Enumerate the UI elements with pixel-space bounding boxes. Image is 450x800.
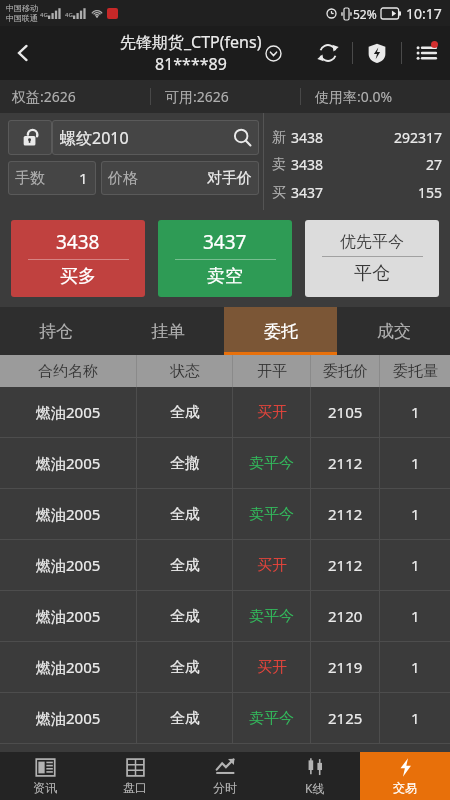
button[interactable]: Back: [0, 26, 46, 80]
button[interactable]: 优先平今: [305, 220, 439, 297]
button[interactable]: 持仓: [0, 307, 112, 355]
staticText: 2119: [328, 657, 363, 677]
staticText: 27: [324, 155, 442, 174]
staticText: 交易: [393, 780, 417, 795]
staticText: 平仓: [354, 262, 390, 285]
staticText: 权益:2626: [12, 87, 76, 106]
staticText: 3438: [291, 155, 324, 174]
button[interactable]: 分时: [180, 752, 270, 800]
button[interactable]: Refresh: [304, 26, 352, 80]
button[interactable]: 先锋期货_CTP(fens): [120, 31, 282, 75]
staticText: 先锋期货_CTP(fens): [120, 31, 262, 53]
staticText: 中国移动: [6, 3, 38, 13]
button[interactable]: 手数: [8, 161, 96, 195]
staticText: 委托价: [323, 362, 368, 381]
staticText: 2112: [328, 504, 363, 524]
staticText: 81****89: [155, 53, 227, 75]
staticText: 卖平今: [249, 505, 294, 524]
staticText: 螺纹2010: [60, 127, 129, 149]
staticText: 委托: [264, 321, 298, 342]
staticText: 3437: [291, 183, 324, 202]
staticText: 可用:2626: [165, 87, 229, 106]
button[interactable]: 盘口: [90, 752, 180, 800]
staticText: 优先平今: [340, 232, 404, 252]
staticText: 1: [411, 453, 420, 473]
button[interactable]: 燃油2005: [0, 693, 450, 743]
staticText: 1: [411, 555, 420, 575]
staticText: 全撤: [170, 454, 200, 473]
staticText: 2125: [328, 708, 363, 728]
staticText: 卖: [272, 156, 286, 174]
staticText: 燃油2005: [36, 555, 101, 575]
staticText: 对手价: [207, 169, 252, 188]
staticText: 3438: [56, 229, 100, 255]
staticText: 买开: [257, 403, 287, 422]
button[interactable]: 3438: [11, 220, 145, 297]
staticText: 开平: [257, 362, 287, 381]
staticText: 状态: [170, 362, 200, 381]
staticText: 1: [411, 657, 420, 677]
staticText: 资讯: [33, 780, 57, 795]
staticText: 1: [411, 708, 420, 728]
staticText: 成交: [377, 321, 411, 342]
staticText: 卖平今: [249, 454, 294, 473]
staticText: 2112: [328, 555, 363, 575]
staticText: 分时: [213, 780, 237, 795]
button[interactable]: Security: [353, 26, 401, 80]
staticText: 全成: [170, 607, 200, 626]
staticText: 52%: [353, 6, 377, 22]
staticText: 卖平今: [249, 709, 294, 728]
staticText: 全成: [170, 709, 200, 728]
staticText: 燃油2005: [36, 657, 101, 677]
staticText: 新: [272, 129, 286, 147]
staticText: 燃油2005: [36, 402, 101, 422]
button[interactable]: 交易: [360, 752, 450, 800]
button[interactable]: 螺纹2010: [52, 120, 259, 155]
staticText: 155: [324, 183, 442, 202]
staticText: 4G: [65, 11, 73, 19]
button[interactable]: 3437: [158, 220, 292, 297]
staticText: 全成: [170, 505, 200, 524]
staticText: 1: [79, 168, 88, 188]
button[interactable]: 成交: [337, 307, 450, 355]
staticText: 燃油2005: [36, 453, 101, 473]
staticText: K线: [305, 780, 325, 796]
button[interactable]: 挂单: [112, 307, 224, 355]
staticText: 1: [411, 606, 420, 626]
staticText: 燃油2005: [36, 504, 101, 524]
button[interactable]: 委托: [224, 307, 337, 355]
staticText: 燃油2005: [36, 708, 101, 728]
staticText: 买开: [257, 658, 287, 677]
staticText: 全成: [170, 403, 200, 422]
staticText: 10:17: [406, 4, 442, 23]
button[interactable]: 燃油2005: [0, 438, 450, 488]
staticText: 卖平今: [249, 607, 294, 626]
staticText: 买: [272, 184, 286, 202]
button[interactable]: 价格: [101, 161, 259, 195]
button[interactable]: 燃油2005: [0, 489, 450, 539]
staticText: 委托量: [393, 362, 438, 381]
staticText: 买开: [257, 556, 287, 575]
staticText: 合约名称: [38, 362, 98, 381]
staticText: 中国联通: [6, 13, 38, 23]
staticText: 3438: [291, 128, 324, 147]
button[interactable]: Unlock: [8, 120, 52, 155]
staticText: 价格: [108, 169, 138, 188]
staticText: 手数: [15, 169, 45, 188]
staticText: 2105: [328, 402, 363, 422]
staticText: 盘口: [123, 780, 147, 795]
button[interactable]: 燃油2005: [0, 642, 450, 692]
button[interactable]: Menu: [402, 26, 450, 80]
button[interactable]: 燃油2005: [0, 591, 450, 641]
button[interactable]: 资讯: [0, 752, 90, 800]
staticText: 燃油2005: [36, 606, 101, 626]
button[interactable]: 燃油2005: [0, 540, 450, 590]
staticText: 全成: [170, 658, 200, 677]
button[interactable]: K线: [270, 752, 360, 800]
staticText: 1: [411, 402, 420, 422]
staticText: 3437: [203, 229, 247, 255]
button[interactable]: 燃油2005: [0, 387, 450, 437]
staticText: 全成: [170, 556, 200, 575]
staticText: 2112: [328, 453, 363, 473]
staticText: 使用率:0.0%: [315, 87, 393, 106]
